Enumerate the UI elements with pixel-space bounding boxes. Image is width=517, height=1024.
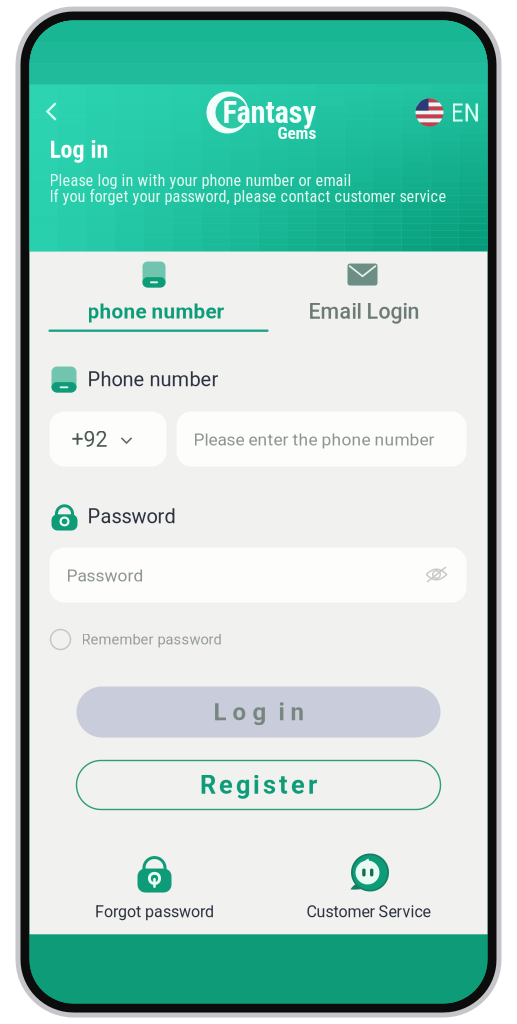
button[interactable]: Back	[45, 96, 79, 126]
button[interactable]: Country code +92	[49, 411, 166, 466]
staticText: Please log in with your phone number or …	[49, 171, 351, 190]
staticText: Please enter the phone number	[193, 429, 434, 450]
button[interactable]: phone number	[29, 251, 258, 332]
staticText: Gems	[277, 123, 316, 143]
staticText: +92	[71, 427, 107, 452]
button[interactable]: Email Login	[258, 251, 487, 332]
staticText: Password	[87, 505, 175, 528]
staticText: R e g i s t e r	[200, 770, 317, 800]
button[interactable]: Fantasy Gems	[199, 86, 307, 134]
staticText: L o g i n	[213, 698, 303, 726]
button[interactable]: Phone number field	[176, 411, 466, 466]
staticText: Log in	[49, 135, 108, 163]
button[interactable]: Customer Service	[261, 852, 475, 921]
button[interactable]: Forgot password	[47, 852, 261, 921]
button[interactable]: Remember password	[29, 629, 487, 649]
staticText: Fantasy	[222, 94, 316, 130]
button[interactable]: R e g i s t e r	[76, 760, 440, 809]
staticText: Customer Service	[306, 902, 430, 921]
staticText: Email Login	[308, 299, 419, 324]
button[interactable]: L o g i n	[76, 686, 440, 737]
staticText: Password	[66, 565, 143, 586]
staticText: Remember password	[81, 631, 221, 648]
staticText: EN	[450, 97, 480, 128]
staticText: phone number	[87, 299, 224, 324]
staticText: Phone number	[87, 368, 218, 391]
button[interactable]: Language English	[415, 98, 480, 126]
staticText: If you forget your password, please cont…	[49, 187, 446, 206]
button[interactable]: Password field	[49, 547, 466, 602]
staticText: Forgot password	[95, 902, 214, 921]
